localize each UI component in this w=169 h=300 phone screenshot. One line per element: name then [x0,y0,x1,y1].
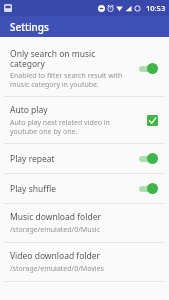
staticText: Settings [10,20,49,34]
staticText: Enabled to filter search result with mus… [10,71,129,89]
staticText: Play repeat [10,153,55,165]
staticText: /storage/emulated/0/Music [10,225,100,235]
button[interactable]: Music download folder [0,204,169,242]
other: Auto play enabled [147,115,158,126]
other: Toggle setting [138,63,158,74]
button[interactable]: Toggle setting [135,61,161,76]
button[interactable]: Only search on music category [0,41,169,96]
button[interactable]: Auto play enabled [144,113,161,128]
button[interactable]: Video download folder [0,243,169,281]
staticText: Only search on music category [10,48,129,69]
staticText: Play shuffle [10,183,57,195]
staticText: Music download folder [10,211,101,223]
staticText: Auto play [10,104,48,116]
staticText: Auto play next related video in youtube … [10,118,138,136]
staticText: Video download folder [10,250,101,262]
button[interactable]: Play repeat [0,144,169,173]
staticText: /storage/emulated/0/Movies [10,264,104,274]
button[interactable]: Play shuffle [0,174,169,203]
button[interactable]: Toggle setting [135,151,161,166]
button[interactable]: Auto play [0,97,169,143]
other: Toggle setting [138,183,158,194]
other: Toggle setting [138,153,158,164]
button[interactable]: Toggle setting [135,181,161,196]
staticText: 10:53 [146,3,166,13]
